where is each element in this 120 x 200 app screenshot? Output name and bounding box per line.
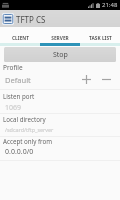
staticText: Default xyxy=(5,75,31,85)
button[interactable]: Remove profile xyxy=(99,72,113,86)
staticText: 0.0.0.0/0 xyxy=(5,147,34,157)
button[interactable]: Default xyxy=(3,73,77,86)
staticText: Profile xyxy=(3,63,23,72)
staticText: Stop xyxy=(53,50,68,60)
staticText: CLIENT xyxy=(12,35,29,42)
staticText: SERVER xyxy=(51,35,69,42)
button[interactable]: CLIENT xyxy=(0,30,40,46)
button[interactable]: /sdcard/tftp_server xyxy=(0,126,120,136)
button[interactable]: TASK LIST xyxy=(80,30,120,46)
staticText: Listen port xyxy=(3,92,35,100)
staticText: 21:48 xyxy=(102,1,118,9)
staticText: TASK LIST xyxy=(89,35,112,42)
staticText: Local directory xyxy=(3,115,46,123)
button[interactable]: TFTP CS xyxy=(0,10,120,27)
staticText: 1069 xyxy=(5,103,22,113)
staticText: Accept only from xyxy=(3,137,53,145)
staticText: /sdcard/tftp_server xyxy=(5,126,54,133)
button[interactable]: Stop xyxy=(4,47,116,62)
staticText: TFTP CS xyxy=(16,14,46,25)
button[interactable]: SERVER xyxy=(40,30,80,46)
button[interactable]: 1069 xyxy=(0,103,120,113)
button[interactable]: 0.0.0.0/0 xyxy=(0,147,120,160)
button[interactable]: Add profile xyxy=(79,72,93,86)
